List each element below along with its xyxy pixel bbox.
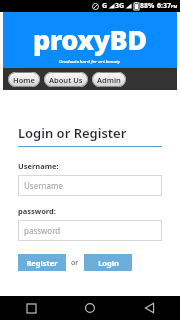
button[interactable]: Recent apps — [22, 299, 40, 317]
staticText: Register — [26, 258, 58, 268]
staticText: Login or Register — [18, 124, 127, 142]
staticText: Home — [13, 75, 35, 85]
staticText: Username — [24, 180, 63, 191]
staticText: 6:37 — [157, 1, 171, 11]
staticText: About Us — [49, 75, 83, 85]
staticText: password: — [18, 206, 56, 216]
staticText: proxyBD — [33, 21, 147, 58]
staticText: Login — [98, 258, 119, 268]
staticText: Admin — [97, 75, 121, 85]
staticText: or — [71, 258, 79, 268]
button[interactable]: Login — [84, 254, 132, 271]
button[interactable]: Back — [140, 299, 158, 317]
staticText: 3G — [115, 1, 125, 11]
staticText: Username: — [18, 161, 59, 171]
button[interactable]: password — [18, 220, 162, 241]
staticText: 88% — [140, 1, 155, 11]
staticText: G — [102, 1, 108, 11]
button[interactable]: Home — [81, 299, 99, 317]
button[interactable]: Home — [8, 72, 40, 87]
button[interactable]: Username — [18, 175, 162, 196]
button[interactable]: Register — [18, 254, 66, 271]
staticText: password — [24, 225, 61, 236]
button[interactable]: Admin — [92, 72, 126, 87]
staticText: Graduate hard for art bounty — [59, 59, 121, 64]
staticText: PM — [171, 4, 178, 9]
button[interactable]: About Us — [44, 72, 88, 87]
